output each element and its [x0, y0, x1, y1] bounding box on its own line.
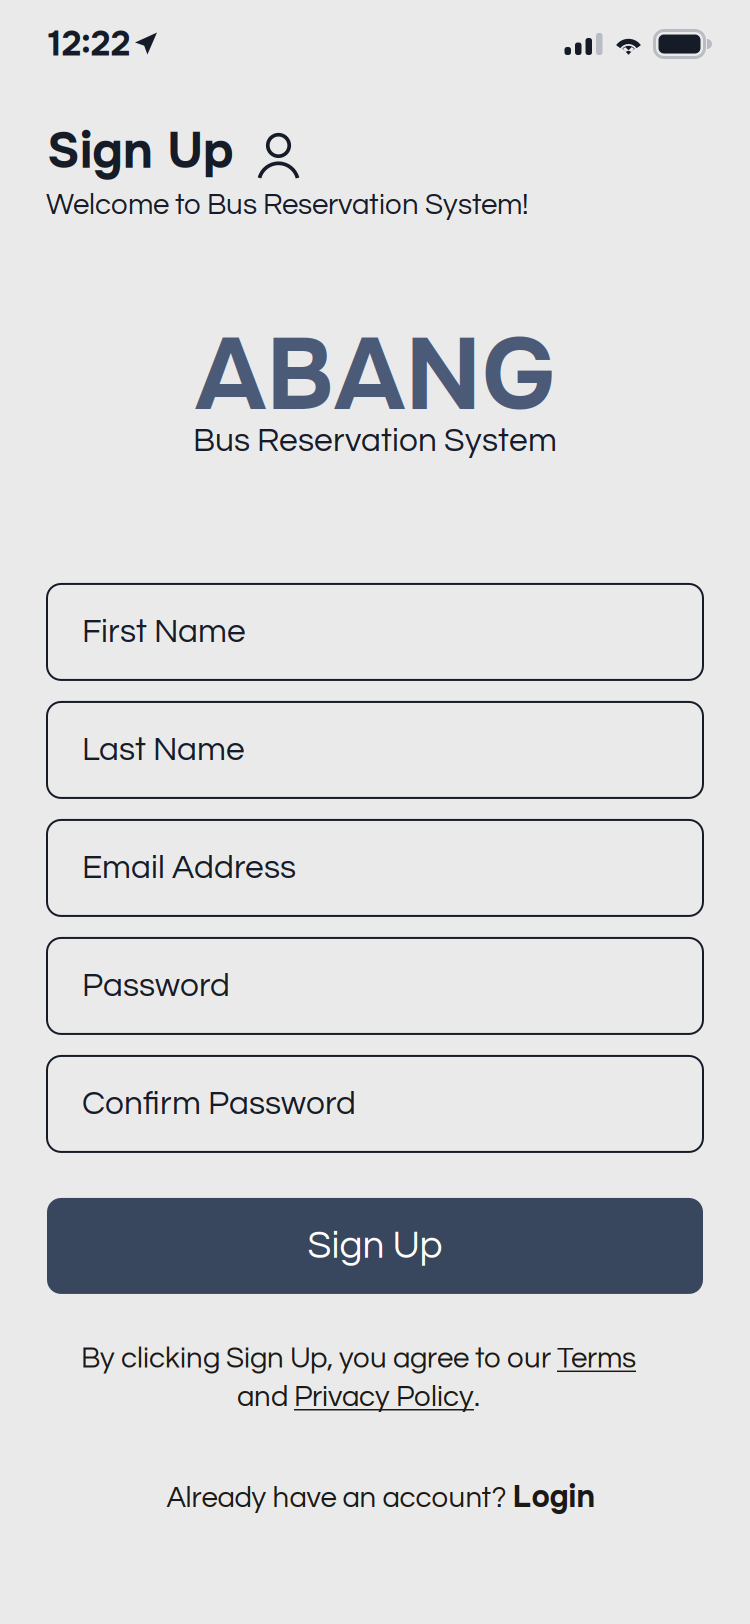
- button[interactable]: Last Name: [47, 702, 703, 798]
- staticText: Email Address: [82, 851, 296, 885]
- button[interactable]: Already have an account? Login: [12, 1478, 750, 1516]
- staticText: 12:22: [48, 22, 130, 66]
- button[interactable]: First Name: [47, 584, 703, 680]
- staticText: By clicking Sign Up, you agree to our Te…: [81, 1344, 636, 1373]
- staticText: Bus Reservation System: [193, 424, 557, 458]
- staticText: Sign Up: [47, 120, 234, 183]
- staticText: Already have an account? Login: [166, 1478, 595, 1516]
- staticText: Welcome to Bus Reservation System!: [46, 190, 528, 220]
- button[interactable]: Email Address: [47, 820, 703, 916]
- button[interactable]: Confirm Password: [47, 1056, 703, 1152]
- staticText: Last Name: [82, 733, 245, 767]
- staticText: Password: [82, 969, 230, 1003]
- button[interactable]: Sign Up: [47, 1198, 703, 1294]
- button[interactable]: Password: [47, 938, 703, 1034]
- staticText: Confirm Password: [82, 1087, 356, 1121]
- staticText: and Privacy Policy.: [237, 1382, 480, 1412]
- staticText: First Name: [82, 615, 246, 649]
- staticText: Sign Up: [307, 1226, 442, 1266]
- staticText: ABANG: [195, 312, 555, 440]
